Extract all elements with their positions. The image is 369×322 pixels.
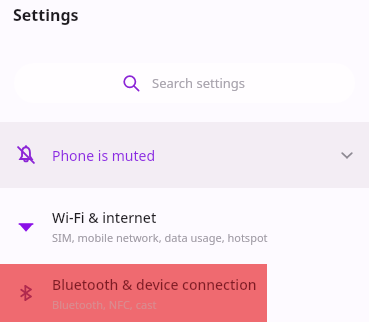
staticText: Bluetooth & device connection xyxy=(52,275,257,294)
staticText: Wi-Fi & internet xyxy=(52,208,157,227)
staticText: Search settings xyxy=(152,74,246,92)
staticText: SIM, mobile network, data usage, hotspot xyxy=(52,230,268,245)
staticText: Bluetooth, NFC, cast xyxy=(52,297,157,312)
button[interactable]: Wi-Fi & internet xyxy=(0,188,369,264)
button[interactable]: Phone is muted xyxy=(0,122,369,188)
staticText: Settings xyxy=(13,4,79,26)
button[interactable]: Expand xyxy=(325,133,369,177)
button[interactable]: Search settings xyxy=(14,63,355,103)
staticText: Phone is muted xyxy=(52,146,156,165)
button[interactable]: Bluetooth & device connection xyxy=(0,264,369,322)
